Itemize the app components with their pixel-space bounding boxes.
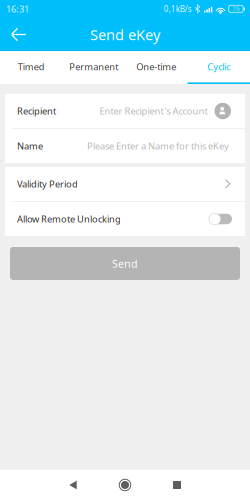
staticText: Name xyxy=(17,140,43,152)
button[interactable]: Recent apps xyxy=(162,470,192,500)
button[interactable]: Recipient xyxy=(5,94,245,128)
staticText: Recipient xyxy=(17,105,56,117)
staticText: Permanent xyxy=(69,60,118,73)
staticText: Send xyxy=(112,256,138,271)
button[interactable]: Name xyxy=(5,129,245,163)
button[interactable]: Validity Period xyxy=(5,167,245,201)
button[interactable]: Timed xyxy=(0,51,62,84)
staticText: Enter Recipient's Account xyxy=(99,105,207,117)
staticText: Allow Remote Unlocking xyxy=(17,213,121,225)
button[interactable]: One-time xyxy=(125,51,187,84)
button[interactable]: Home xyxy=(110,470,140,500)
staticText: Send eKey xyxy=(90,25,160,44)
button[interactable]: Cyclic xyxy=(187,51,250,84)
staticText: 16:31 xyxy=(6,3,29,15)
button[interactable]: Send xyxy=(10,247,240,280)
button[interactable]: Permanent xyxy=(62,51,125,84)
staticText: Cyclic xyxy=(207,60,230,73)
staticText: 76 xyxy=(232,5,240,13)
staticText: Please Enter a Name for this eKey xyxy=(87,140,229,152)
button[interactable]: Back xyxy=(0,18,34,51)
button[interactable]: Back xyxy=(58,470,88,500)
button[interactable]: Allow Remote Unlocking xyxy=(209,211,235,227)
staticText: 0,1kB/s xyxy=(164,4,192,14)
staticText: One-time xyxy=(136,60,176,73)
staticText: Timed xyxy=(18,60,45,73)
staticText: Validity Period xyxy=(17,178,78,190)
